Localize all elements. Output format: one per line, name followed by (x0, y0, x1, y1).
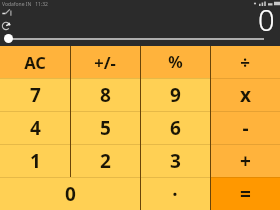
staticText: 3 (170, 148, 181, 174)
button[interactable]: AC (0, 46, 70, 78)
staticText: Vodafone IN 11:32 (2, 1, 48, 8)
staticText: 7 (30, 82, 41, 108)
button[interactable]: - (210, 111, 280, 144)
button[interactable]: 2 (70, 144, 140, 177)
button[interactable]: 3 (140, 144, 210, 177)
staticText: 6 (170, 115, 181, 141)
staticText: + (240, 148, 251, 174)
button[interactable]: . (140, 177, 210, 210)
button[interactable]: Scientific mode (1, 8, 13, 20)
button[interactable]: Drag handle (4, 34, 13, 43)
staticText: 9 (170, 82, 181, 108)
button[interactable]: +/- (70, 46, 140, 78)
button[interactable]: 7 (0, 78, 70, 111)
staticText: 0 (65, 181, 76, 207)
staticText: % (168, 51, 183, 73)
button[interactable]: 5 (70, 111, 140, 144)
button[interactable]: ÷ (210, 46, 280, 78)
staticText: 1 (30, 148, 41, 174)
button[interactable]: 8 (70, 78, 140, 111)
staticText: 4 (30, 115, 41, 141)
button[interactable]: 6 (140, 111, 210, 144)
staticText: 2 (100, 148, 111, 174)
staticText: ÷ (240, 51, 250, 74)
button[interactable]: = (210, 177, 280, 210)
button[interactable]: History (1, 21, 13, 33)
staticText: +/- (94, 51, 116, 73)
staticText: 0 (258, 0, 275, 39)
button[interactable]: + (210, 144, 280, 177)
button[interactable]: 9 (140, 78, 210, 111)
staticText: x (240, 82, 251, 108)
staticText: = (240, 181, 251, 207)
button[interactable]: x (210, 78, 280, 111)
button[interactable]: % (140, 46, 210, 78)
staticText: 8 (100, 82, 111, 108)
staticText: - (242, 115, 249, 141)
button[interactable]: 1 (0, 144, 70, 177)
staticText: AC (24, 51, 46, 73)
button[interactable]: 4 (0, 111, 70, 144)
staticText: . (172, 176, 178, 202)
button[interactable]: 0 (0, 177, 140, 210)
staticText: 5 (100, 115, 111, 141)
